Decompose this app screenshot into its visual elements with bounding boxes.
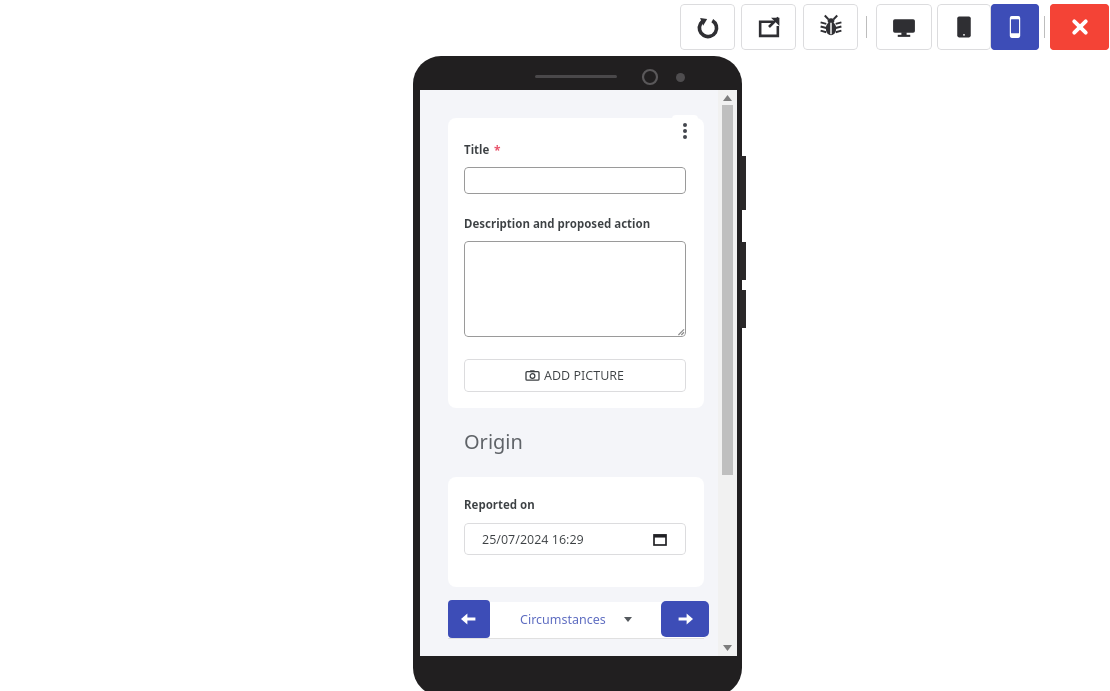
button[interactable]: Tablet preview (937, 4, 991, 50)
button[interactable]: Previous (448, 600, 490, 638)
staticText: Reported on (464, 497, 535, 513)
button[interactable]: More options (672, 115, 698, 146)
staticText: Description and proposed action (464, 216, 651, 232)
staticText: 25/07/2024 16:29 (482, 531, 584, 548)
button[interactable]: Next (661, 601, 709, 637)
button[interactable]: ADD PICTURE (464, 359, 686, 392)
staticText: Title (464, 142, 490, 158)
button[interactable]: Circumstances (500, 600, 652, 638)
button[interactable] (464, 167, 686, 194)
staticText: Circumstances (520, 611, 606, 628)
button[interactable]: Phone preview (991, 4, 1039, 50)
button[interactable]: Desktop preview (876, 4, 932, 50)
button[interactable]: Open in new window (741, 4, 796, 50)
button[interactable]: Reload (680, 4, 735, 50)
button[interactable]: Close (1050, 4, 1109, 50)
staticText: Origin (464, 428, 523, 455)
staticText: ADD PICTURE (544, 367, 625, 384)
button[interactable]: 25/07/2024 16:29 (464, 523, 686, 555)
button[interactable] (464, 241, 686, 337)
button[interactable]: Debug (803, 4, 858, 50)
staticText: * (494, 142, 501, 158)
